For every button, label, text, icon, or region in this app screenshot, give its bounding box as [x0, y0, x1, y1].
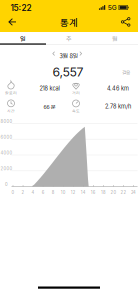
staticText: 6,557 [52, 65, 83, 79]
button[interactable]: 주 [46, 32, 92, 45]
staticText: 0 [11, 190, 14, 195]
staticText: 14 [81, 190, 86, 195]
staticText: 66 분 [43, 102, 55, 110]
staticText: 12 [71, 190, 76, 195]
button[interactable]: Back [3, 14, 21, 30]
staticText: 시간 [7, 108, 15, 114]
staticText: 10 [61, 190, 66, 195]
staticText: 일 [20, 34, 26, 43]
staticText: 4000 [0, 150, 12, 155]
staticText: 통계 [60, 15, 78, 29]
staticText: 218 kcal [39, 85, 59, 92]
button[interactable]: 월 [92, 32, 138, 45]
staticText: 걸음 [122, 69, 130, 76]
staticText: 0 [5, 182, 8, 187]
staticText: 16 [91, 190, 96, 195]
staticText: 18 [101, 190, 106, 195]
staticText: 거리 [72, 90, 80, 96]
staticText: 3월 8일 [59, 51, 78, 60]
button[interactable]: 일 [0, 32, 46, 45]
staticText: 15:22 [10, 3, 31, 13]
staticText: 2 [21, 190, 24, 195]
staticText: 5G [108, 3, 117, 12]
staticText: 4.46 km [107, 85, 129, 92]
staticText: 칼로리 [5, 90, 17, 96]
staticText: 4 [32, 190, 35, 195]
staticText: 8000 [0, 119, 12, 124]
staticText: 6 [42, 190, 45, 195]
staticText: 24 [131, 190, 136, 195]
staticText: 월 [112, 34, 118, 43]
staticText: 속도 [72, 108, 80, 114]
button[interactable]: Next day [79, 51, 87, 60]
button[interactable]: Share [117, 14, 135, 30]
staticText: 20 [110, 190, 116, 195]
staticText: 주 [66, 34, 72, 43]
staticText: 8 [52, 190, 55, 195]
staticText: 6000 [0, 135, 12, 140]
staticText: 22 [120, 190, 126, 195]
staticText: 2.78 km/h [105, 103, 131, 110]
button[interactable]: Previous day [52, 51, 60, 60]
staticText: 2000 [0, 166, 12, 171]
